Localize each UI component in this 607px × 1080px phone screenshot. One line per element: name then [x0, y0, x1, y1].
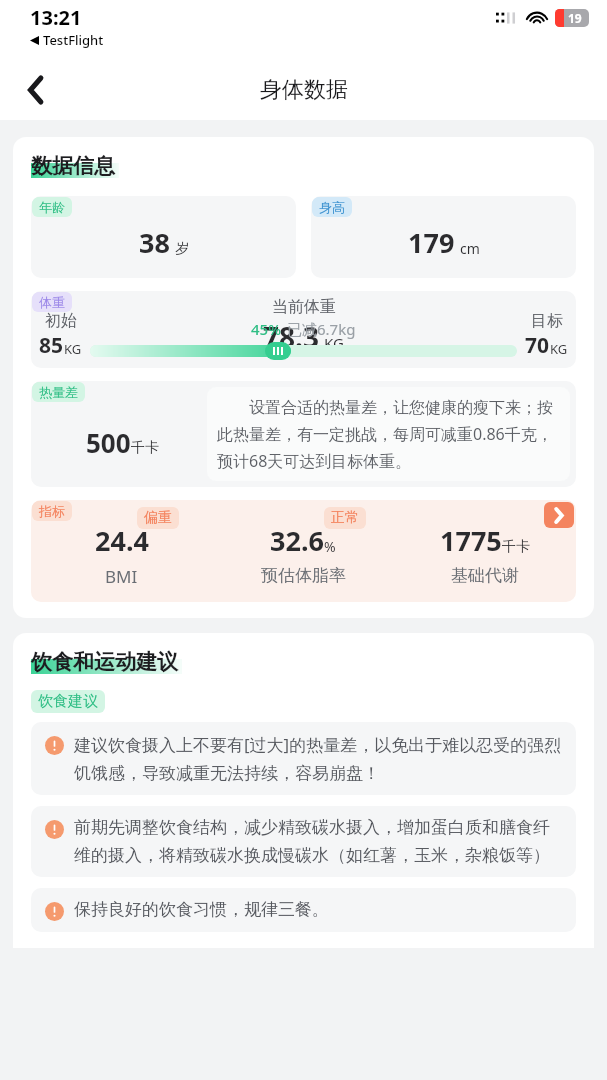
staticText: 饮食建议: [38, 692, 98, 711]
staticText: 身体数据: [260, 76, 348, 104]
staticText: 预估体脂率: [261, 565, 346, 586]
staticText: 饮食和运动建议: [31, 649, 178, 675]
staticText: 78.3: [263, 318, 319, 356]
staticText: 岁: [175, 240, 189, 258]
staticText: KG: [550, 340, 568, 358]
staticText: 千卡: [131, 439, 159, 457]
staticText: TestFlight: [43, 31, 104, 49]
staticText: 19: [568, 10, 582, 26]
button[interactable]: 前期先调整饮食结构，减少精致碳水摄入，增加蛋白质和膳食纤维的摄入，将精致碳水换成…: [31, 806, 576, 877]
staticText: 身高: [319, 199, 345, 215]
staticText: 当前体重: [272, 297, 336, 317]
staticText: 85: [39, 331, 64, 360]
staticText: 正常: [331, 509, 359, 527]
staticText: 偏重: [144, 509, 172, 527]
staticText: 千卡: [502, 538, 530, 556]
staticText: %: [324, 537, 336, 556]
staticText: 13:21: [30, 4, 82, 31]
staticText: KG: [64, 340, 82, 358]
button[interactable]: 身高: [311, 196, 576, 278]
staticText: 45%: [251, 319, 281, 339]
staticText: 500: [86, 425, 131, 460]
button[interactable]: 建议饮食摄入上不要有[过大]的热量差，以免出于难以忍受的强烈饥饿感，导致减重无法…: [31, 722, 576, 795]
button[interactable]: 热量差: [31, 381, 576, 487]
staticText: 保持良好的饮食习惯，规律三餐。: [74, 899, 329, 920]
staticText: 32.6: [270, 522, 324, 559]
staticText: 初始: [45, 311, 77, 331]
staticText: 179: [408, 224, 455, 261]
button[interactable]: 保持良好的饮食习惯，规律三餐。: [31, 888, 576, 932]
staticText: 年龄: [39, 199, 65, 215]
staticText: 38: [139, 224, 170, 261]
button[interactable]: Weight progress handle: [265, 342, 291, 360]
button[interactable]: 体重: [31, 291, 576, 368]
staticText: 设置合适的热量差，让您健康的瘦下来；按此热量差，有一定挑战，每周可减重0.86千…: [217, 396, 560, 472]
button[interactable]: Back: [14, 68, 58, 112]
staticText: 目标: [531, 311, 563, 331]
staticText: 前期先调整饮食结构，减少精致碳水摄入，增加蛋白质和膳食纤维的摄入，将精致碳水换成…: [74, 817, 562, 866]
button[interactable]: 指标: [31, 500, 576, 602]
staticText: 24.4: [95, 522, 149, 559]
staticText: 指标: [39, 503, 65, 519]
staticText: KG: [324, 333, 344, 353]
staticText: 基础代谢: [451, 565, 519, 586]
staticText: 70: [525, 331, 550, 360]
staticText: 体重: [39, 294, 65, 310]
staticText: 已减6.7kg: [287, 319, 356, 339]
button[interactable]: 年龄: [31, 196, 296, 278]
staticText: cm: [460, 239, 480, 258]
staticText: 数据信息: [31, 153, 115, 179]
button[interactable]: More metrics: [544, 502, 574, 528]
staticText: BMI: [105, 565, 138, 588]
staticText: 建议饮食摄入上不要有[过大]的热量差，以免出于难以忍受的强烈饥饿感，导致减重无法…: [74, 733, 562, 784]
staticText: 1775: [440, 522, 502, 559]
staticText: 热量差: [39, 384, 78, 400]
